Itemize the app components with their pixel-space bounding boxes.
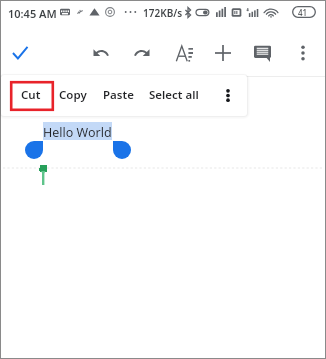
button[interactable]: Select all — [149, 81, 199, 109]
staticText: 172KB/s — [143, 6, 183, 20]
staticText: 41 — [298, 7, 308, 18]
button[interactable]: Insert — [205, 35, 241, 71]
staticText: 10:45 AM — [8, 6, 57, 21]
button[interactable]: Format — [166, 35, 202, 71]
staticText: Hello World — [43, 124, 112, 141]
button[interactable]: More options — [217, 81, 239, 109]
button[interactable]: More options — [285, 35, 321, 71]
button[interactable]: Paste — [103, 81, 134, 109]
button[interactable]: Done — [2, 35, 38, 71]
staticText: Select all — [149, 87, 199, 103]
button[interactable]: Undo — [83, 35, 119, 71]
staticText: Paste — [103, 87, 134, 103]
button[interactable]: Cut — [21, 81, 41, 109]
button[interactable]: Comment — [245, 35, 280, 71]
staticText: Copy — [59, 87, 87, 103]
staticText: Cut — [21, 87, 41, 103]
button[interactable]: Copy — [59, 81, 87, 109]
button[interactable]: Redo — [124, 35, 160, 71]
